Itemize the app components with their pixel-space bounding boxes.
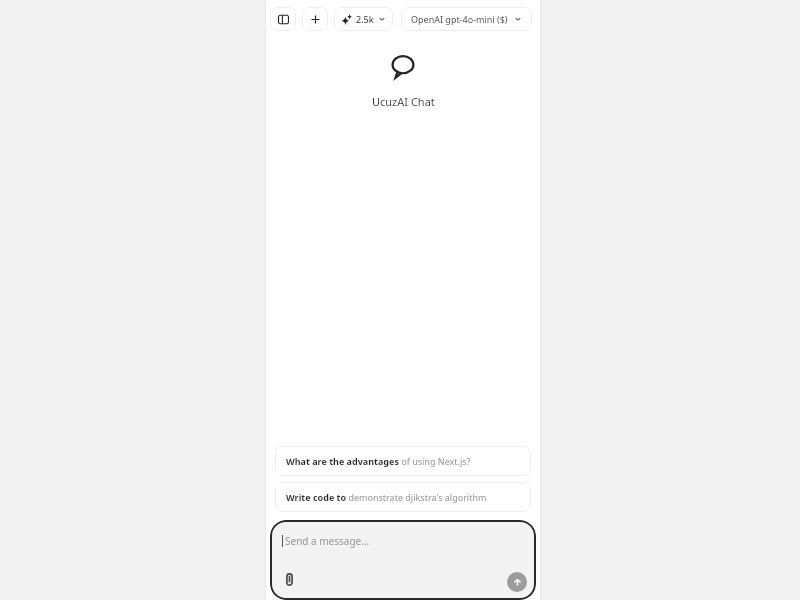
button[interactable]: What are the advantages of using Next.js… [275,446,531,476]
button[interactable]: Send message [507,572,527,592]
staticText: OpenAI gpt-4o-mini ($) [411,13,508,25]
button[interactable]: Write code to demonstrate djikstra's alg… [275,482,531,512]
staticText: What are the advantages of using Next.js… [286,455,471,467]
staticText: UcuzAI Chat [372,94,435,109]
button[interactable]: Attach file [280,570,298,588]
button[interactable]: OpenAI gpt-4o-mini ($) [401,7,532,31]
button[interactable]: 2.5k [334,7,393,31]
button[interactable]: Send a message... [270,520,536,600]
staticText: Write code to demonstrate djikstra's alg… [286,491,487,503]
staticText: Send a message... [285,534,370,548]
button[interactable]: New chat [302,7,328,31]
staticText: 2.5k [356,13,374,25]
button[interactable]: Toggle sidebar [270,7,296,31]
